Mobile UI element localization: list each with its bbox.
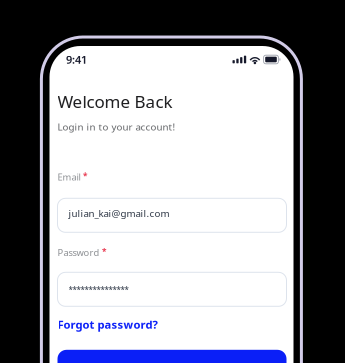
button[interactable]: Login [57,350,286,363]
staticText: Forgot password? [57,317,157,332]
staticText: 9:41 [66,52,87,67]
staticText: julian_kai@gmail.com [68,207,169,220]
staticText: Login in to your account! [57,120,175,133]
staticText: Welcome Back [57,90,172,113]
button[interactable]: Forgot password? [57,318,286,330]
staticText: * [102,246,106,257]
staticText: *************** [68,284,128,295]
staticText: Password [57,246,99,259]
staticText: * [83,170,87,182]
staticText: Email [57,170,80,183]
